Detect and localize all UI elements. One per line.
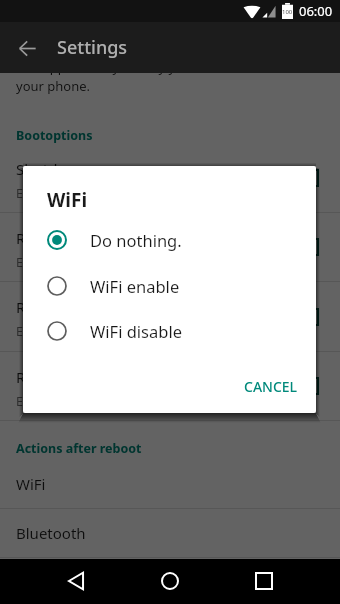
staticText: Use app to easily modify your your phone… [16,58,197,95]
staticText: Reboot UI [16,367,87,387]
button[interactable]: Bluetooth [0,509,340,558]
staticText: WiFi disable [90,320,182,342]
button[interactable]: Recovery [0,282,340,352]
button[interactable]: Back [0,22,51,73]
button[interactable]: Do nothing. [23,218,316,262]
button[interactable]: Recent apps [243,560,284,601]
staticText: Enable [16,323,56,340]
staticText: Enable [16,393,56,410]
staticText: Bootoptions [16,127,93,144]
staticText: Shutdown [16,159,88,179]
staticText: 100 [282,8,293,16]
staticText: Reboot [16,228,67,248]
button[interactable]: Reboot UI [0,352,340,421]
staticText: Bluetooth [16,523,86,543]
button[interactable]: Back [55,560,96,601]
staticText: Settings [57,35,128,60]
button[interactable]: WiFi [0,460,340,509]
button[interactable]: Reboot [0,213,340,282]
button[interactable]: WiFi disable [23,309,316,353]
staticText: 06:00 [299,2,333,20]
staticText: Recovery [16,297,80,317]
button[interactable]: Shutdown [0,144,340,213]
staticText: Enable [16,254,56,271]
staticText: WiFi [47,187,88,213]
button[interactable]: CANCEL [236,371,306,402]
staticText: WiFi enable [90,275,180,297]
staticText: WiFi [16,474,46,494]
staticText: Actions after reboot [16,440,142,457]
button[interactable]: Home [149,560,190,601]
staticText: Enable [16,185,56,202]
button[interactable]: WiFi enable [23,264,316,308]
staticText: CANCEL [244,377,298,396]
staticText: Do nothing. [90,229,182,251]
